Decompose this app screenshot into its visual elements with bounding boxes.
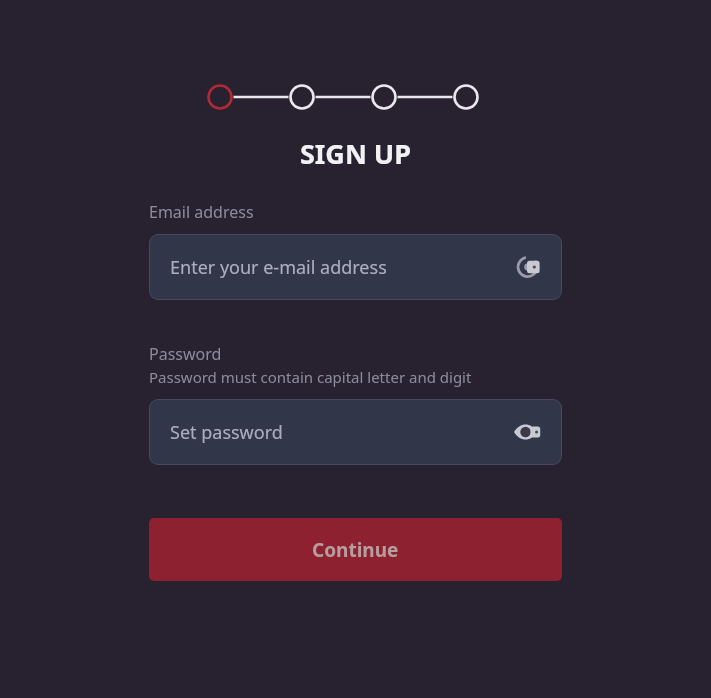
button[interactable]: Set password — [149, 399, 562, 465]
staticText: SIGN UP — [0, 135, 711, 172]
button[interactable]: Show password — [513, 417, 547, 447]
button[interactable]: Continue — [149, 518, 562, 581]
staticText: Set password — [170, 420, 513, 445]
staticText: Enter your e-mail address — [170, 255, 513, 280]
staticText: Email address — [149, 201, 254, 223]
button[interactable]: Email options — [513, 252, 547, 282]
button[interactable]: Enter your e-mail address — [149, 234, 562, 300]
staticText: Password — [149, 343, 222, 365]
staticText: Password must contain capital letter and… — [149, 367, 472, 387]
staticText: Continue — [312, 537, 399, 563]
